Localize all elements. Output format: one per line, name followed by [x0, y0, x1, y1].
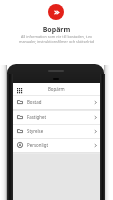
button[interactable]: Menu: [15, 86, 23, 94]
button[interactable]: Bostad: [13, 95, 100, 109]
button[interactable]: Fastighet: [13, 110, 100, 124]
staticText: Styrelse: [27, 128, 44, 134]
button[interactable]: Personligt: [13, 138, 100, 152]
staticText: Fastighet: [27, 114, 47, 120]
staticText: Bopärm: [48, 86, 65, 92]
button[interactable]: Styrelse: [13, 124, 100, 138]
staticText: Bostad: [27, 99, 42, 105]
staticText: Personligt: [27, 142, 48, 148]
staticText: All information som rör till bostaden, t…: [0, 34, 113, 44]
staticText: Bopärm: [0, 25, 113, 35]
